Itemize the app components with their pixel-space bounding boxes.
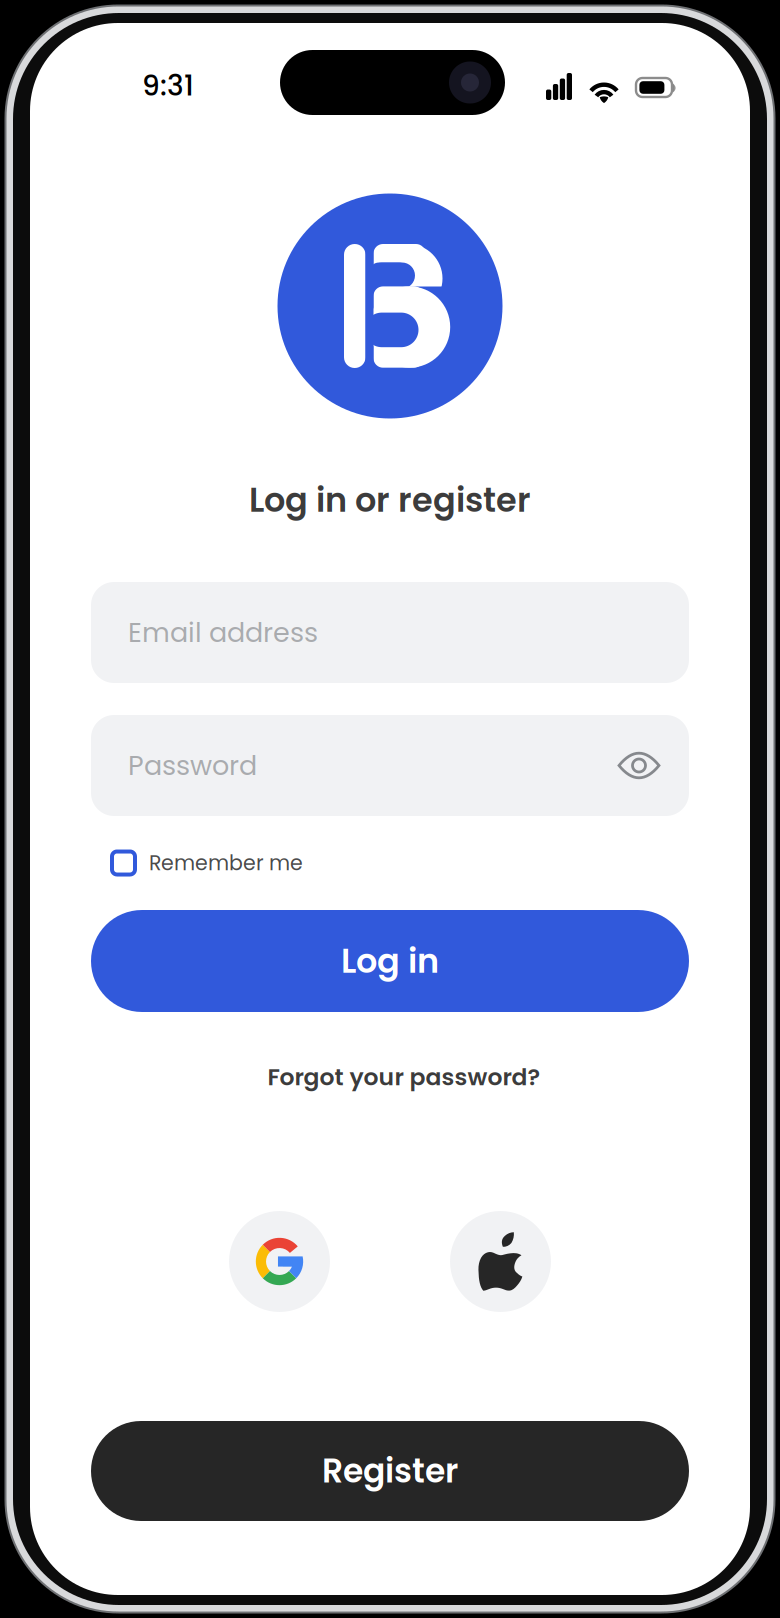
staticText: Register — [322, 1448, 458, 1494]
button[interactable]: Remember me — [91, 841, 689, 885]
button[interactable]: Sign in with Apple — [450, 1211, 551, 1312]
staticText: Log in — [341, 938, 439, 984]
staticText: Email address — [128, 614, 318, 651]
button[interactable]: Register — [91, 1421, 689, 1521]
button[interactable]: Forgot your password? — [44, 1055, 764, 1099]
staticText: Remember me — [149, 849, 303, 877]
staticText: Password — [128, 747, 257, 784]
button[interactable]: Sign in with Google — [229, 1211, 330, 1312]
button[interactable]: Log in — [91, 910, 689, 1012]
staticText: 9:31 — [142, 66, 194, 105]
staticText: Forgot your password? — [267, 1061, 540, 1093]
button[interactable]: Show password — [617, 750, 661, 780]
staticText: Log in or register — [249, 477, 531, 523]
